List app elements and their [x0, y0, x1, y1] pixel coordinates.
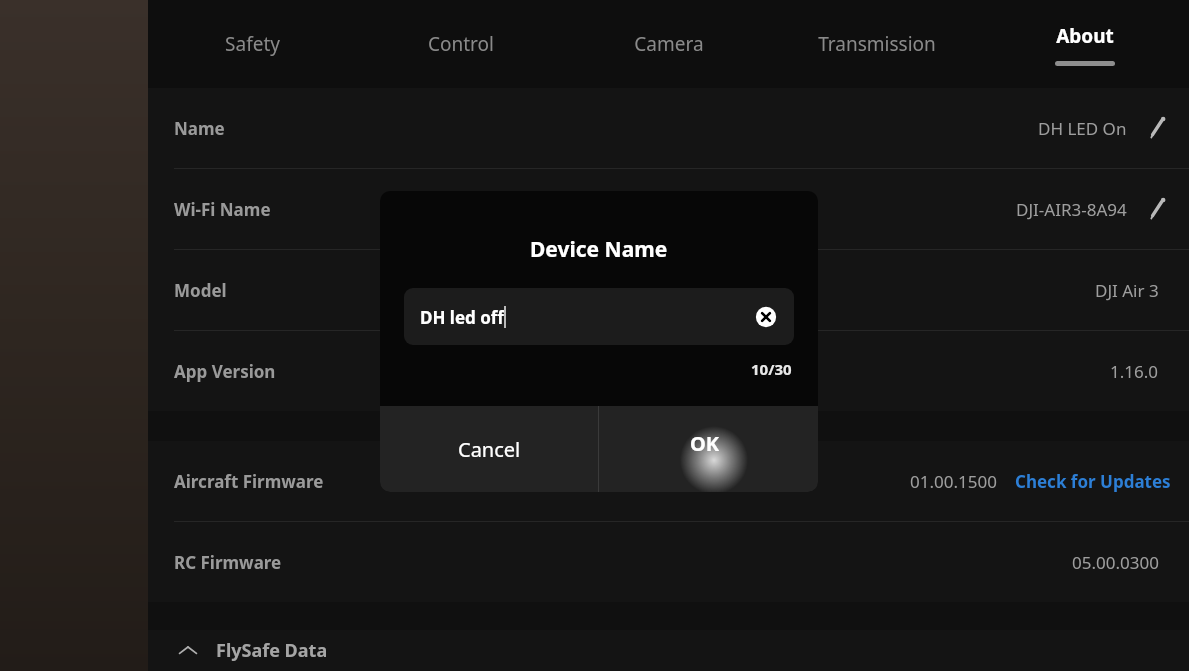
staticText: RC Firmware [174, 551, 282, 574]
button[interactable]: Safety [148, 0, 357, 88]
staticText: Name [174, 117, 225, 140]
staticText: DH led off [420, 306, 504, 329]
button[interactable]: Name [148, 88, 1189, 168]
staticText: Aircraft Firmware [174, 470, 324, 493]
button[interactable]: Collapse [148, 630, 1189, 671]
staticText: 1.16.0 [1110, 360, 1159, 383]
staticText: Control [428, 31, 494, 57]
staticText: Wi-Fi Name [174, 198, 271, 221]
button[interactable]: Camera [565, 0, 773, 88]
button[interactable]: Edit Name [1141, 112, 1173, 144]
button[interactable]: Aircraft Firmware [148, 441, 1189, 521]
staticText: Model [174, 279, 227, 302]
staticText: Check for Updates [1015, 470, 1171, 493]
staticText: App Version [174, 360, 276, 383]
button[interactable]: RC Firmware [148, 522, 1189, 602]
button[interactable]: About [981, 0, 1189, 88]
staticText: FlySafe Data [216, 638, 328, 663]
staticText: DJI Air 3 [1095, 279, 1159, 302]
button[interactable]: Cancel [380, 406, 598, 492]
staticText: Cancel [458, 436, 521, 463]
button[interactable]: App Version [148, 331, 1189, 411]
staticText: Camera [634, 31, 704, 57]
other: Collapse [174, 637, 202, 665]
button[interactable]: OK [599, 406, 818, 492]
staticText: DH LED On [1038, 117, 1127, 140]
staticText: 01.00.1500 [910, 470, 997, 493]
staticText: 10/30 [751, 359, 792, 379]
button[interactable]: Wi-Fi Name [148, 169, 1189, 249]
button[interactable]: Model [148, 250, 1189, 330]
staticText: DJI-AIR3-8A94 [1016, 198, 1127, 221]
button[interactable]: Edit Wi-Fi Name [1141, 193, 1173, 225]
staticText: Transmission [818, 31, 936, 57]
staticText: Safety [225, 31, 280, 57]
staticText: 05.00.0300 [1072, 551, 1159, 574]
staticText: About [1056, 23, 1114, 49]
staticText: OK [690, 430, 720, 457]
button[interactable]: Control [357, 0, 565, 88]
button[interactable]: Clear text [752, 303, 780, 331]
button[interactable]: Check for Updates [1013, 464, 1173, 499]
button[interactable]: DH led off [404, 288, 794, 345]
button[interactable]: Transmission [773, 0, 981, 88]
staticText: Device Name [530, 235, 668, 264]
